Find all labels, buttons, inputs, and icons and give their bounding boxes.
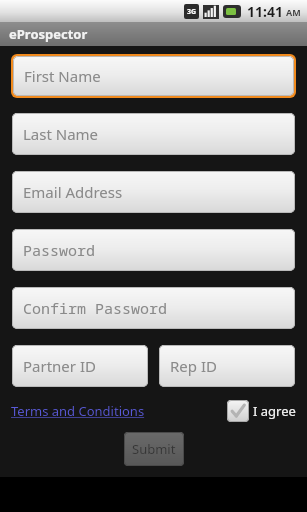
staticText: Terms and Conditions — [11, 402, 145, 420]
button[interactable]: First Name — [13, 56, 294, 96]
staticText: I agree — [253, 402, 296, 420]
button[interactable]: Confirm Password — [12, 287, 295, 329]
other: I agree checkbox — [227, 400, 249, 422]
button[interactable]: Last Name — [12, 113, 295, 155]
button[interactable]: Terms and Conditions — [11, 402, 145, 420]
button[interactable]: eProspector — [0, 22, 307, 46]
button[interactable]: Email Address — [12, 171, 295, 213]
button[interactable]: Partner ID — [12, 345, 148, 387]
staticText: 3G — [187, 7, 197, 17]
button[interactable]: Submit — [124, 432, 184, 466]
button[interactable]: Password — [12, 229, 295, 271]
staticText: Last Name — [23, 124, 99, 144]
staticText: Partner ID — [23, 356, 96, 376]
staticText: Submit — [132, 440, 176, 458]
staticText: First Name — [24, 66, 101, 86]
staticText: Rep ID — [170, 356, 217, 376]
staticText: Password — [23, 240, 96, 260]
staticText: AM — [286, 6, 301, 18]
staticText: 11:41 — [247, 2, 283, 21]
staticText: eProspector — [9, 25, 88, 43]
button[interactable]: Rep ID — [159, 345, 295, 387]
staticText: Email Address — [23, 182, 123, 202]
staticText: Confirm Password — [23, 298, 168, 318]
button[interactable]: I agree checkbox — [227, 400, 296, 422]
